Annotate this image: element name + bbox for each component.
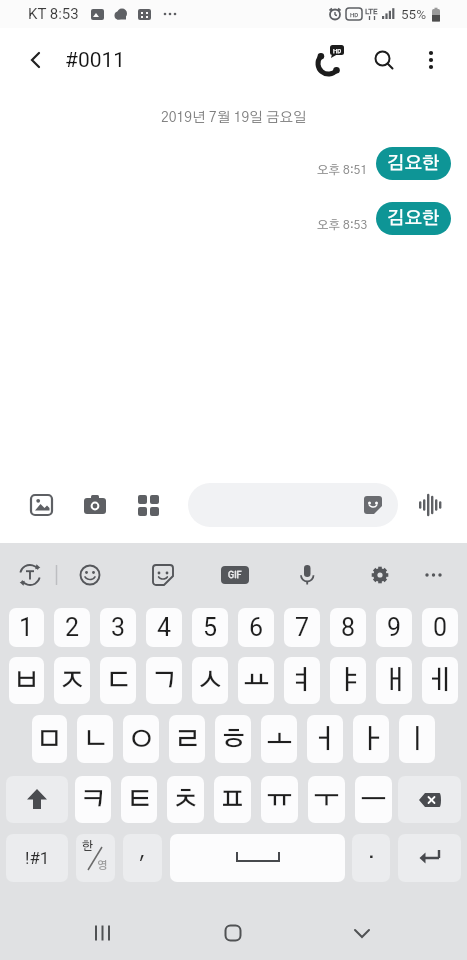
staticText: ㅊ (172, 786, 199, 813)
button[interactable]: ㅂ (9, 657, 44, 704)
staticText: HD (333, 47, 342, 54)
button[interactable]: ㄱ (146, 657, 182, 704)
button[interactable]: 3 (100, 608, 136, 647)
button[interactable]: ㅛ (238, 657, 274, 704)
button[interactable]: ㄴ (77, 715, 113, 763)
staticText: ㅠ (266, 786, 293, 813)
staticText: 2 (65, 613, 80, 642)
staticText: 8 (341, 613, 356, 642)
button[interactable]: ㅊ (167, 776, 204, 823)
button[interactable] (364, 496, 382, 514)
button[interactable]: ㅌ (121, 776, 157, 823)
button[interactable]: 김요한 (376, 147, 451, 180)
button[interactable]: 김요한 (376, 202, 451, 235)
staticText: 4 (157, 613, 172, 642)
button[interactable]: 6 (238, 608, 274, 647)
button[interactable] (149, 561, 177, 589)
button[interactable]: 9 (376, 608, 412, 647)
staticText: ㅌ (126, 786, 153, 813)
staticText: 55% (401, 6, 427, 22)
staticText: KT 8:53 (28, 5, 79, 23)
button[interactable] (31, 494, 53, 516)
button[interactable] (6, 776, 68, 823)
button[interactable]: ㅗ (261, 715, 297, 763)
button[interactable]: 한 (76, 834, 115, 882)
button[interactable] (340, 911, 384, 955)
staticText: ㄹ (174, 726, 201, 753)
staticText: ㅜ (313, 786, 340, 813)
button[interactable]: ㄹ (169, 715, 205, 763)
staticText: 1 (19, 613, 34, 642)
staticText: , (139, 843, 146, 862)
button[interactable]: 1 (9, 608, 44, 647)
staticText: 5 (203, 613, 218, 642)
staticText: GIF (228, 570, 242, 581)
button[interactable] (357, 28, 411, 92)
button[interactable]: ㅈ (54, 657, 90, 704)
staticText: ㅁ (36, 726, 63, 753)
button[interactable] (10, 28, 62, 92)
staticText: 7 (295, 613, 310, 642)
button[interactable] (419, 493, 443, 517)
staticText: 0 (433, 613, 448, 642)
staticText: HD (350, 11, 359, 18)
button[interactable]: , (123, 834, 162, 882)
staticText: ㅂ (13, 667, 40, 694)
button[interactable] (170, 834, 345, 882)
button[interactable] (411, 28, 451, 92)
button[interactable]: ㅏ (353, 715, 389, 763)
staticText: 9 (387, 613, 402, 642)
button[interactable]: !#1 (6, 834, 68, 882)
button[interactable]: 7 (284, 608, 320, 647)
staticText: LTE (365, 7, 378, 16)
button[interactable]: ㅐ (376, 657, 412, 704)
button[interactable]: . (352, 834, 390, 882)
staticText: 한 (82, 840, 94, 852)
button[interactable]: ㅎ (215, 715, 251, 763)
button[interactable]: GIF (221, 566, 249, 584)
button[interactable]: ㅔ (422, 657, 458, 704)
button[interactable]: ㅑ (330, 657, 366, 704)
button[interactable]: ㅍ (214, 776, 251, 823)
staticText: 3 (111, 613, 126, 642)
button[interactable]: ㄷ (100, 657, 136, 704)
button[interactable] (84, 493, 108, 517)
button[interactable] (398, 776, 461, 823)
button[interactable]: 5 (192, 608, 228, 647)
button[interactable] (211, 911, 255, 955)
button[interactable] (293, 561, 321, 589)
staticText: ㅋ (80, 786, 107, 813)
staticText: 김요한 (387, 155, 440, 173)
button[interactable]: ㅠ (261, 776, 298, 823)
button[interactable]: ㅓ (307, 715, 343, 763)
staticText: 6 (249, 613, 264, 642)
button[interactable]: ㅣ (399, 715, 435, 763)
button[interactable]: 0 (422, 608, 458, 647)
button[interactable]: ㅇ (123, 715, 159, 763)
staticText: #0011 (65, 48, 126, 73)
staticText: ㅑ (335, 667, 362, 694)
button[interactable]: ㅅ (192, 657, 228, 704)
button[interactable] (138, 495, 159, 516)
button[interactable]: 2 (54, 608, 90, 647)
button[interactable]: HD (303, 28, 357, 92)
button[interactable]: ㅜ (308, 776, 345, 823)
button[interactable]: 8 (330, 608, 366, 647)
button[interactable] (16, 561, 44, 589)
button[interactable]: ㅡ (355, 776, 392, 823)
staticText: ㄷ (105, 667, 132, 694)
button[interactable] (188, 483, 398, 527)
staticText: ㅔ (427, 667, 454, 694)
staticText: ㅓ (312, 726, 339, 753)
button[interactable] (366, 561, 394, 589)
button[interactable] (398, 834, 461, 882)
button[interactable]: 4 (146, 608, 182, 647)
button[interactable] (81, 911, 125, 955)
button[interactable]: ㅕ (284, 657, 320, 704)
staticText: ㅏ (358, 726, 385, 753)
button[interactable]: ㅁ (32, 715, 67, 763)
button[interactable] (420, 561, 448, 589)
button[interactable] (76, 561, 104, 589)
staticText: ㅣ (404, 726, 431, 753)
button[interactable]: ㅋ (75, 776, 111, 823)
